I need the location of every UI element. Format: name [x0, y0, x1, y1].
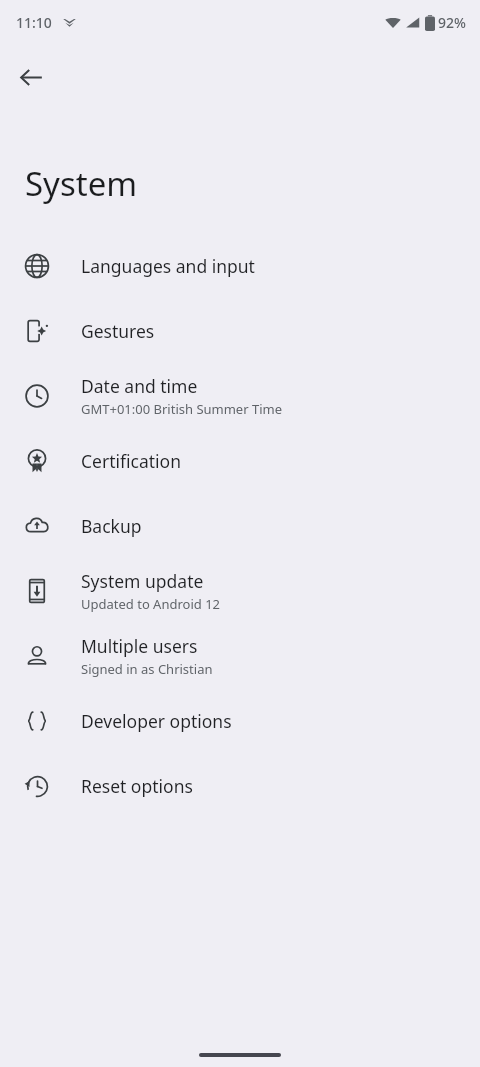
staticText: 92% [438, 13, 466, 32]
staticText: Developer options [81, 709, 232, 733]
staticText: System [25, 161, 138, 206]
staticText: Multiple users [81, 634, 198, 658]
button[interactable]: System update [0, 558, 480, 623]
button[interactable]: Languages and input [0, 233, 480, 298]
staticText: Gestures [81, 319, 155, 343]
staticText: GMT+01:00 British Summer Time [81, 400, 283, 418]
staticText: Updated to Android 12 [81, 595, 221, 613]
button[interactable]: Multiple users [0, 623, 480, 688]
button[interactable]: Reset options [0, 753, 480, 818]
button[interactable]: Backup [0, 493, 480, 558]
button[interactable]: Date and time [0, 363, 480, 428]
button[interactable]: Certification [0, 428, 480, 493]
staticText: Reset options [81, 774, 193, 798]
button[interactable]: Developer options [0, 688, 480, 753]
staticText: Certification [81, 449, 181, 473]
button[interactable]: Gestures [0, 298, 480, 363]
staticText: Backup [81, 514, 142, 538]
staticText: System update [81, 569, 204, 593]
staticText: Date and time [81, 374, 198, 398]
staticText: 11:10 [16, 13, 52, 32]
staticText: Signed in as Christian [81, 660, 213, 678]
button[interactable]: Back [9, 55, 53, 99]
staticText: Languages and input [81, 254, 255, 278]
